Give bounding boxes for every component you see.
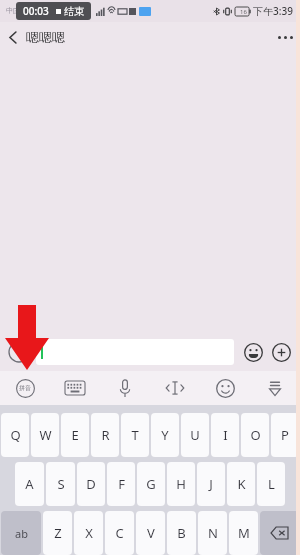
button[interactable]: Emoji <box>200 371 250 405</box>
button[interactable]: Backspace <box>260 511 299 555</box>
button[interactable]: G <box>137 462 165 506</box>
staticText: ab <box>15 526 28 541</box>
button[interactable]: Keyboard layout <box>50 371 100 405</box>
button[interactable]: Move cursor <box>150 371 200 405</box>
staticText: 结束 <box>64 5 84 18</box>
staticText: H <box>176 475 186 493</box>
button[interactable] <box>36 339 234 365</box>
staticText: J <box>209 475 213 493</box>
staticText: 拼音 <box>19 384 31 392</box>
button[interactable]: Hide keyboard <box>250 371 300 405</box>
button[interactable]: T <box>121 413 149 457</box>
staticText: B <box>177 524 186 542</box>
staticText: I <box>223 426 228 444</box>
staticText: P <box>281 426 289 444</box>
button[interactable]: L <box>257 462 285 506</box>
button[interactable]: V <box>136 511 165 555</box>
staticText: K <box>237 475 246 493</box>
staticText: W <box>39 426 52 444</box>
button[interactable]: Emoji <box>240 339 266 365</box>
button[interactable]: F <box>107 462 135 506</box>
staticText: X <box>85 524 93 542</box>
button[interactable]: M <box>229 511 258 555</box>
staticText: L <box>268 475 275 493</box>
staticText: 中国移动 小米移动 <box>6 6 64 16</box>
button[interactable]: ab <box>1 511 41 555</box>
button[interactable]: Q <box>1 413 29 457</box>
staticText: E <box>71 426 79 444</box>
staticText: T <box>131 426 139 444</box>
button[interactable]: C <box>105 511 134 555</box>
button[interactable]: P <box>271 413 299 457</box>
button[interactable]: Input method <box>0 371 50 405</box>
staticText: Z <box>54 524 62 542</box>
button[interactable]: K <box>227 462 255 506</box>
button[interactable]: S <box>46 462 75 506</box>
staticText: C <box>115 524 124 542</box>
button[interactable]: Voice input <box>6 339 32 365</box>
staticText: U <box>190 426 200 444</box>
staticText: A <box>25 475 34 493</box>
button[interactable]: R <box>91 413 119 457</box>
staticText: 00:03 <box>23 4 49 18</box>
button[interactable]: 00:03 <box>16 2 91 20</box>
button[interactable]: E <box>61 413 89 457</box>
staticText: Y <box>161 426 169 444</box>
button[interactable]: J <box>197 462 225 506</box>
staticText: O <box>250 426 261 444</box>
button[interactable]: H <box>167 462 195 506</box>
staticText: R <box>101 426 110 444</box>
button[interactable]: X <box>74 511 103 555</box>
button[interactable]: W <box>31 413 59 457</box>
button[interactable]: I <box>211 413 239 457</box>
staticText: G <box>146 475 156 493</box>
button[interactable]: D <box>77 462 105 506</box>
staticText: Q <box>10 426 21 444</box>
staticText: V <box>147 524 155 542</box>
button[interactable]: U <box>181 413 209 457</box>
staticText: N <box>208 524 218 542</box>
staticText: 下午3:39 <box>253 4 293 18</box>
button[interactable]: A <box>15 462 44 506</box>
button[interactable]: O <box>241 413 269 457</box>
staticText: M <box>238 524 250 542</box>
button[interactable]: N <box>198 511 227 555</box>
button[interactable]: B <box>167 511 196 555</box>
button[interactable]: Z <box>43 511 72 555</box>
staticText: 嗯嗯嗯 <box>26 29 65 45</box>
button[interactable]: More options <box>270 22 300 52</box>
staticText: F <box>118 475 125 493</box>
button[interactable]: More functions <box>268 339 294 365</box>
staticText: 16 <box>240 8 247 16</box>
button[interactable]: Voice <box>100 371 150 405</box>
staticText: S <box>57 475 65 493</box>
staticText: D <box>86 475 96 493</box>
button[interactable]: Back <box>0 24 26 50</box>
button[interactable]: Y <box>151 413 179 457</box>
